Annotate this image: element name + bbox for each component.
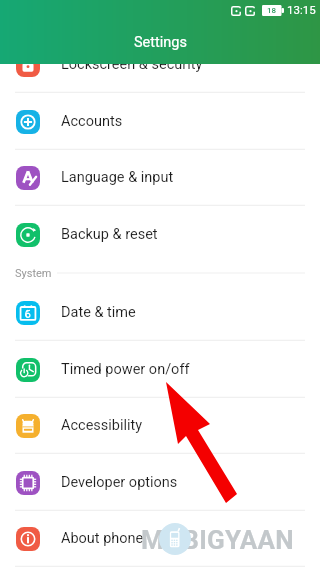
staticText: 18 bbox=[267, 6, 277, 15]
staticText: Timed power on/off bbox=[61, 361, 190, 378]
staticText: System bbox=[15, 267, 52, 280]
staticText: About phone bbox=[61, 530, 144, 547]
staticText: Developer options bbox=[61, 474, 178, 491]
button[interactable]: Backup & reset bbox=[0, 206, 320, 263]
staticText: Accounts bbox=[61, 113, 123, 130]
button[interactable]: Date & time bbox=[0, 284, 320, 341]
staticText: Backup & reset bbox=[61, 226, 158, 243]
staticText: Language & input bbox=[61, 169, 174, 186]
button[interactable]: Timed power on/off bbox=[0, 341, 320, 398]
staticText: 13:15 bbox=[287, 3, 316, 16]
staticText: Settings bbox=[134, 34, 187, 51]
button[interactable]: About phone bbox=[0, 510, 320, 567]
button[interactable]: Accessibility bbox=[0, 397, 320, 454]
staticText: MOBIGYAAN bbox=[141, 525, 295, 555]
button[interactable]: Accounts bbox=[0, 93, 320, 150]
staticText: Date & time bbox=[61, 304, 136, 321]
button[interactable]: Lockscreen & security bbox=[0, 36, 320, 93]
staticText: Accessibility bbox=[61, 417, 143, 434]
button[interactable]: Language & input bbox=[0, 149, 320, 206]
button[interactable]: Developer options bbox=[0, 454, 320, 511]
staticText: Lockscreen & security bbox=[61, 56, 203, 73]
